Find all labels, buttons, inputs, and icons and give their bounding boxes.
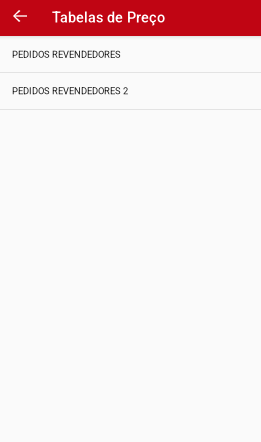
staticText: Tabelas de Preço — [52, 9, 165, 26]
staticText: PEDIDOS REVENDEDORES 2 — [12, 85, 128, 96]
button[interactable]: Back — [0, 0, 40, 36]
staticText: PEDIDOS REVENDEDORES — [12, 49, 121, 60]
button[interactable]: PEDIDOS REVENDEDORES — [0, 36, 261, 73]
button[interactable]: PEDIDOS REVENDEDORES 2 — [0, 73, 261, 110]
